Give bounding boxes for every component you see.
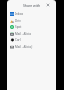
- staticText: Mail - Alicia J: [15, 45, 33, 49]
- button[interactable]: Carl: [7, 36, 56, 43]
- staticText: Carl: [15, 38, 21, 42]
- staticText: Spot: [15, 25, 22, 29]
- button[interactable]: Inbox: [7, 10, 56, 17]
- button[interactable]: Mail - Alicia J: [7, 43, 56, 50]
- button[interactable]: Mail - Alicia: [7, 30, 56, 37]
- button[interactable]: Spot: [7, 23, 56, 30]
- button[interactable]: Driv: [7, 17, 56, 24]
- staticText: Driv: [15, 19, 21, 23]
- button[interactable]: Close: [45, 2, 51, 8]
- staticText: Inbox: [15, 12, 24, 16]
- staticText: Share with: [23, 3, 41, 8]
- staticText: Mail - Alicia: [15, 32, 31, 36]
